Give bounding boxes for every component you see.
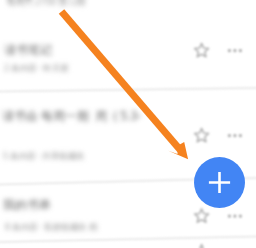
staticText: 5 条内容 · 共享收藏夹: [3, 150, 85, 162]
button[interactable]: Add new list: [194, 157, 245, 208]
staticText: 读书会 每周一期 周 ( 5.3-: [2, 107, 142, 123]
staticText: 每周六 21:00 第12期: [7, 0, 86, 8]
staticText: 我的书单: [3, 197, 51, 212]
staticText: 8 条内容 · 私密收藏夹 档: [5, 221, 98, 233]
staticText: 2 条内容 · 昨天更: [4, 62, 69, 74]
staticText: 读书笔记: [4, 42, 52, 57]
